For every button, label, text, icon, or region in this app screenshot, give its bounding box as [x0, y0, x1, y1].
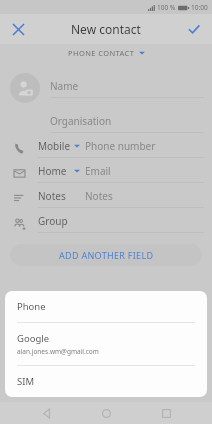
- button[interactable]: Back: [34, 402, 60, 424]
- staticText: Notes: [85, 189, 113, 203]
- button[interactable]: Notes: [0, 186, 212, 211]
- staticText: Name: [50, 79, 79, 93]
- button[interactable]: PHONE CONTACT: [0, 44, 212, 62]
- staticText: PHONE CONTACT: [68, 48, 135, 58]
- staticText: Mobile: [38, 139, 74, 153]
- button[interactable]: Home: [93, 402, 119, 424]
- button[interactable]: Cancel: [6, 17, 30, 41]
- other: Phone: [13, 142, 26, 155]
- staticText: Phone: [17, 300, 46, 313]
- button[interactable]: SIM: [5, 366, 207, 397]
- staticText: SIM: [17, 375, 35, 388]
- staticText: Group: [38, 214, 74, 228]
- other: Group: [13, 217, 26, 230]
- staticText: Organisation: [50, 114, 112, 128]
- staticText: 10:00: [191, 3, 208, 12]
- staticText: alan.jones.wm@gmail.com: [17, 347, 99, 356]
- staticText: Home: [38, 164, 74, 178]
- staticText: 100 %: [157, 3, 176, 12]
- button[interactable]: Save contact: [182, 17, 206, 41]
- staticText: Notes: [38, 189, 74, 203]
- staticText: ADD ANOTHER FIELD: [59, 249, 154, 261]
- other: Email: [13, 167, 26, 180]
- other: Notes: [13, 192, 26, 205]
- staticText: New contact: [71, 21, 141, 37]
- button[interactable]: Email: [0, 161, 212, 186]
- button[interactable]: ADD ANOTHER FIELD: [10, 244, 202, 266]
- button[interactable]: Add photo: [10, 73, 40, 103]
- staticText: Email: [85, 164, 111, 178]
- staticText: Phone number: [85, 139, 156, 153]
- button[interactable]: Phone: [0, 136, 212, 161]
- button[interactable]: Phone: [5, 291, 207, 322]
- button[interactable]: Recent apps: [153, 402, 179, 424]
- button[interactable]: Group: [0, 211, 212, 236]
- staticText: Google: [17, 332, 50, 345]
- button[interactable]: Google: [5, 323, 207, 365]
